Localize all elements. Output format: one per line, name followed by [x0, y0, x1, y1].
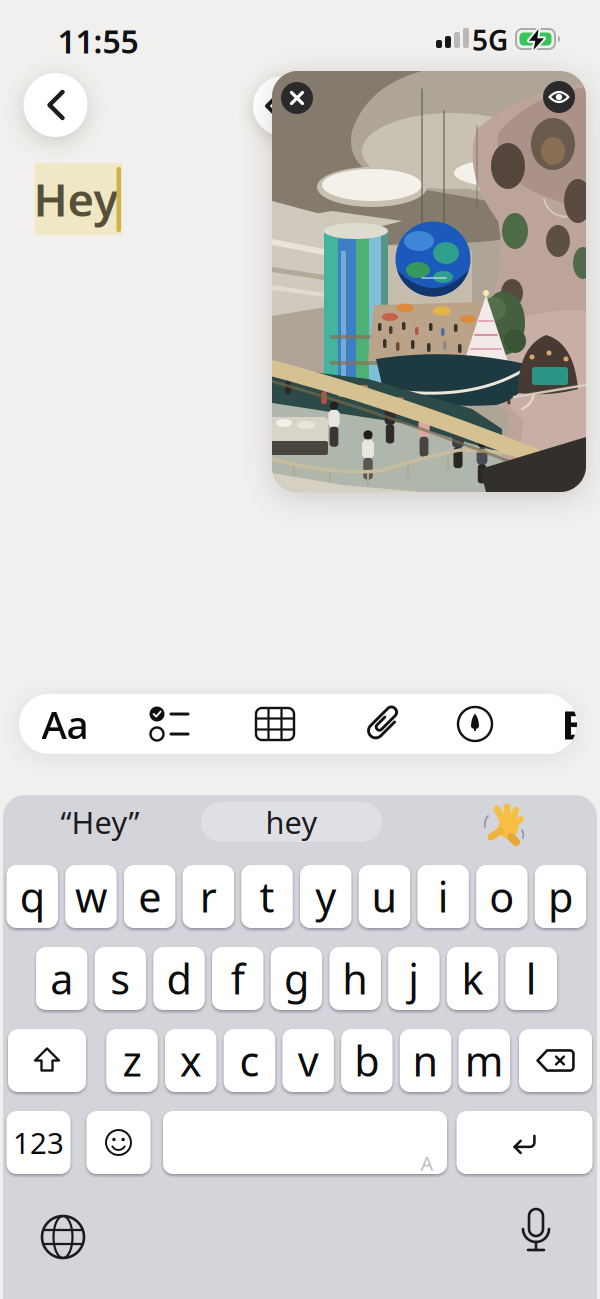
button[interactable]: Remove attachment	[281, 82, 313, 114]
button[interactable]: t	[241, 865, 293, 928]
button[interactable]: u	[359, 865, 410, 928]
staticText: Hey	[33, 169, 118, 229]
staticText: c	[239, 1033, 259, 1088]
button[interactable]: e	[124, 865, 175, 928]
button[interactable]: q	[6, 865, 58, 928]
button[interactable]: r	[183, 865, 234, 928]
button[interactable]: o	[476, 865, 528, 928]
button[interactable]: s	[95, 947, 146, 1010]
staticText: A	[420, 1150, 433, 1176]
button[interactable]: Next keyboard	[35, 1209, 91, 1265]
button[interactable]: Emoji	[86, 1111, 150, 1174]
staticText: i	[438, 869, 449, 924]
button[interactable]: Checklist	[140, 694, 200, 754]
button[interactable]: f	[212, 947, 263, 1010]
staticText: k	[462, 951, 484, 1006]
button[interactable]: Delete	[519, 1029, 592, 1092]
button[interactable]: l	[505, 947, 557, 1010]
staticText: x	[180, 1033, 202, 1088]
button[interactable]: Bold	[553, 694, 597, 754]
button[interactable]: Format	[35, 694, 95, 754]
staticText: t	[260, 869, 275, 924]
button[interactable]: j	[388, 947, 440, 1010]
button[interactable]: v	[282, 1029, 334, 1092]
staticText: z	[122, 1033, 141, 1088]
staticText: 5G	[472, 21, 508, 59]
staticText: a	[50, 951, 73, 1006]
button[interactable]: Return	[456, 1111, 592, 1174]
staticText: q	[20, 869, 45, 924]
staticText: e	[138, 869, 161, 924]
button[interactable]: y	[300, 865, 351, 928]
staticText: “Hey”	[60, 802, 139, 842]
staticText: m	[465, 1033, 504, 1088]
staticText: v	[298, 1033, 319, 1088]
staticText: d	[167, 951, 192, 1006]
button[interactable]: hey	[201, 802, 382, 842]
staticText: u	[371, 869, 397, 924]
button[interactable]: a	[36, 947, 87, 1010]
staticText: f	[231, 951, 245, 1006]
staticText: j	[408, 951, 419, 1006]
staticText: r	[200, 869, 217, 924]
button[interactable]: z	[106, 1029, 158, 1092]
button[interactable]: Wave emoji	[480, 802, 524, 842]
staticText: h	[342, 951, 368, 1006]
button[interactable]: w	[65, 865, 117, 928]
staticText: l	[526, 951, 537, 1006]
button[interactable]: Preview attachment	[543, 81, 575, 113]
staticText: s	[110, 951, 130, 1006]
button[interactable]: Markup	[445, 694, 505, 754]
button[interactable]: Attachment	[352, 694, 412, 754]
button[interactable]: m	[458, 1029, 510, 1092]
staticText: hey	[265, 802, 317, 842]
button[interactable]: x	[165, 1029, 216, 1092]
staticText: b	[354, 1033, 379, 1088]
staticText: g	[284, 951, 309, 1006]
button[interactable]: i	[417, 865, 469, 928]
staticText: 123	[13, 1123, 64, 1162]
staticText: o	[489, 869, 514, 924]
staticText: 11:55	[57, 20, 138, 62]
button[interactable]: n	[400, 1029, 451, 1092]
button[interactable]: Shift	[8, 1029, 86, 1092]
staticText: y	[315, 869, 336, 924]
staticText: n	[413, 1033, 439, 1088]
button[interactable]: h	[329, 947, 381, 1010]
button[interactable]: Dictation	[508, 1203, 564, 1259]
button[interactable]: Back	[23, 73, 87, 137]
staticText: w	[75, 869, 107, 924]
staticText: Aa	[41, 698, 88, 750]
button[interactable]: 123	[6, 1111, 70, 1174]
button[interactable]: b	[341, 1029, 393, 1092]
button[interactable]: g	[271, 947, 322, 1010]
button[interactable]: k	[447, 947, 498, 1010]
button[interactable]: Space	[163, 1111, 447, 1174]
staticText: p	[548, 869, 573, 924]
button[interactable]: “Hey”	[25, 802, 175, 842]
button[interactable]: Table	[245, 694, 305, 754]
button[interactable]: p	[535, 865, 586, 928]
button[interactable]: c	[224, 1029, 275, 1092]
staticText: B	[561, 697, 588, 750]
button[interactable]: d	[153, 947, 205, 1010]
